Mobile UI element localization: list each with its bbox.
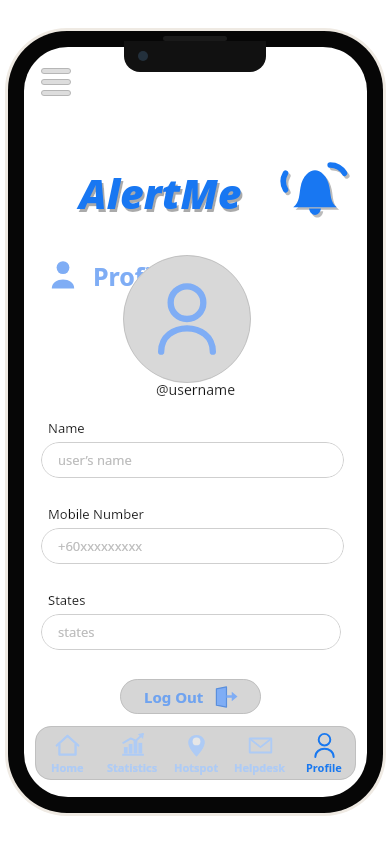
staticText: Profile: [306, 760, 342, 775]
staticText: AlertMe: [81, 168, 244, 224]
staticText: @username: [24, 380, 367, 399]
staticText: +60xxxxxxxxx: [58, 537, 143, 555]
staticText: Log Out: [144, 687, 204, 707]
button[interactable]: Log Out: [120, 679, 261, 714]
button[interactable]: +60xxxxxxxxx: [41, 528, 344, 564]
button[interactable]: Helpdesk: [228, 726, 292, 780]
staticText: Home: [51, 760, 84, 775]
button[interactable]: Menu: [41, 68, 73, 98]
button[interactable]: Statistics: [100, 726, 164, 780]
staticText: Name: [48, 419, 85, 437]
other: Notifications: [282, 161, 348, 227]
staticText: user’s name: [58, 451, 132, 469]
staticText: AlertMe: [79, 165, 242, 221]
staticText: Hotspot: [174, 760, 219, 775]
staticText: Helpdesk: [234, 760, 286, 775]
button[interactable]: Home: [35, 726, 100, 780]
staticText: Mobile Number: [48, 505, 144, 523]
staticText: Profile: [93, 259, 175, 293]
staticText: states: [58, 623, 95, 641]
staticText: Statistics: [107, 760, 158, 775]
button[interactable]: Profile: [292, 726, 356, 780]
button[interactable]: Hotspot: [164, 726, 228, 780]
button[interactable]: states: [41, 614, 341, 650]
button[interactable]: user’s name: [41, 442, 344, 478]
staticText: States: [48, 591, 86, 609]
